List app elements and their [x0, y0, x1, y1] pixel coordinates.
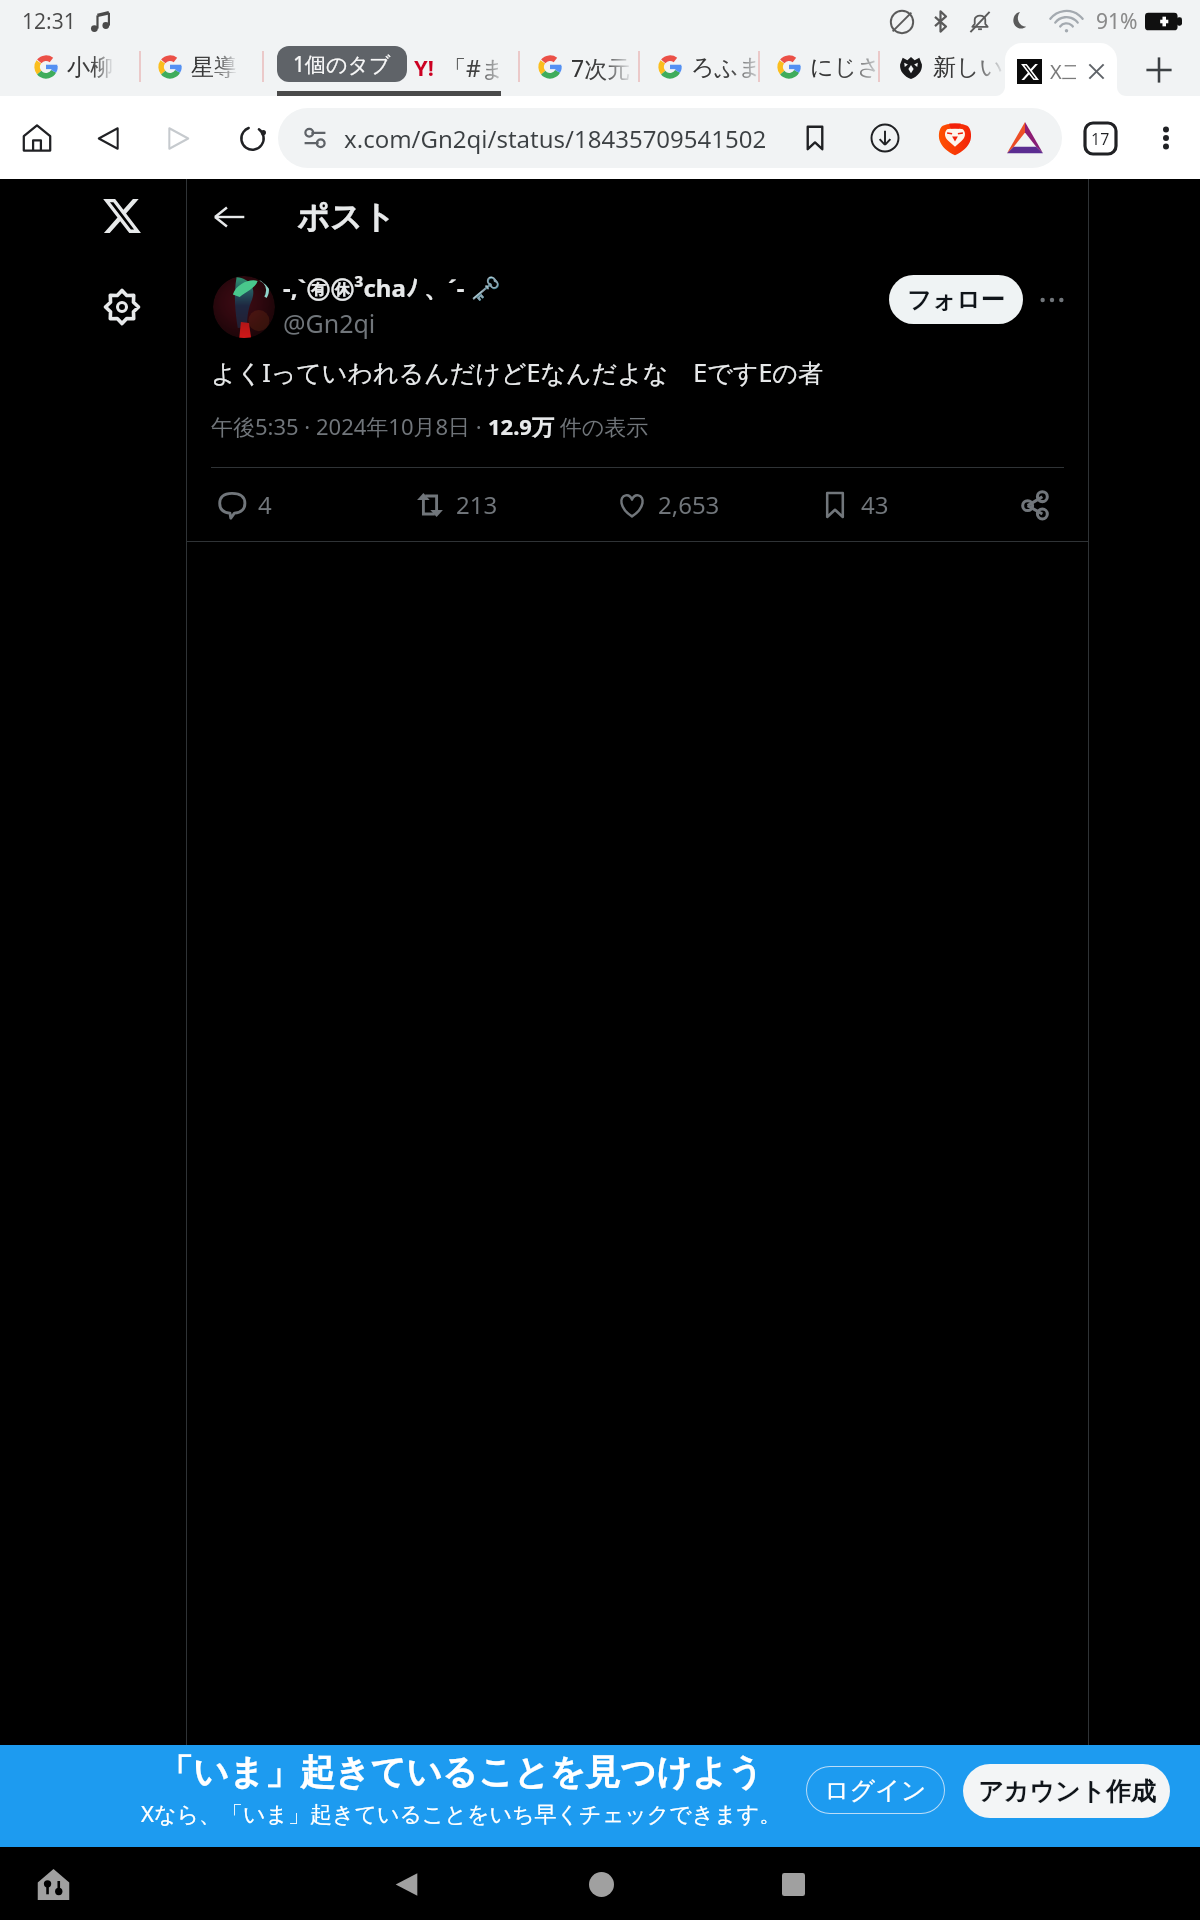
staticText: 1個のタブ [293, 50, 391, 79]
button[interactable]: Home [13, 114, 61, 162]
staticText: Xなら、「いま」起きていることをいち早くチェックできます。 [141, 1798, 781, 1828]
button[interactable]: More [1027, 275, 1077, 325]
staticText: -,`㊒㊡³chaﾉ 、´- 🗝 [283, 271, 501, 304]
staticText: よくIっていわれるんだけどEなんだよな EですEの者 [211, 355, 823, 389]
button[interactable]: 43 [820, 468, 970, 541]
staticText: 7次元 [571, 52, 631, 83]
staticText: 213 [456, 488, 498, 521]
staticText: X二 [1050, 58, 1076, 85]
button[interactable]: Back [199, 187, 259, 247]
button[interactable]: Recents [764, 1855, 822, 1913]
button[interactable]: Brave shields [933, 116, 977, 160]
button[interactable]: アカウント作成 [963, 1764, 1170, 1818]
button[interactable]: Share [1007, 468, 1063, 541]
staticText: 2,653 [658, 488, 720, 521]
staticText: フォロー [907, 285, 1005, 315]
staticText: 星導 [191, 53, 237, 82]
button[interactable]: Profile photo [213, 276, 275, 338]
button[interactable]: 7次元 [538, 43, 642, 91]
staticText: Y! [414, 52, 434, 82]
button[interactable]: フォロー [889, 275, 1023, 324]
button[interactable]: 小柳 [34, 43, 138, 91]
button[interactable]: Brave rewards [1003, 116, 1047, 160]
staticText: 12:31 [22, 7, 76, 36]
staticText: 12.9万 [488, 411, 554, 441]
button[interactable]: Back [377, 1855, 435, 1913]
button[interactable]: にじさ [777, 43, 881, 91]
staticText: 午後5:35 · 2024年10月8日 · [211, 411, 488, 441]
staticText: 新しい [933, 53, 1002, 82]
staticText: x.com/Gn2qi/status/18435709541502 [344, 122, 767, 155]
button[interactable]: x.com/Gn2qi/status/18435709541502 [278, 108, 1062, 168]
button[interactable]: 1個のタブ [277, 46, 407, 82]
button[interactable]: 新しい [898, 43, 1002, 91]
button[interactable]: 4 [217, 468, 367, 541]
button[interactable]: ろふま [658, 43, 762, 91]
staticText: 小柳 [67, 53, 113, 82]
staticText: アカウント作成 [978, 1776, 1156, 1807]
staticText: ログイン [824, 1775, 927, 1806]
button[interactable]: X home [90, 184, 154, 248]
staticText: 「#ま [443, 52, 505, 83]
staticText: ろふま [691, 53, 762, 82]
button[interactable]: Bookmark [793, 116, 837, 160]
button[interactable]: Tabs [1076, 114, 1124, 162]
button[interactable]: Y! [414, 43, 518, 91]
staticText: 91% [1096, 7, 1138, 36]
button[interactable]: Forward [154, 114, 202, 162]
staticText: ポスト [297, 197, 396, 237]
button[interactable]: Back [84, 114, 132, 162]
button[interactable]: New tab [1134, 45, 1184, 95]
button[interactable]: Reload [228, 114, 276, 162]
button[interactable]: Home assistant [27, 1858, 79, 1910]
button[interactable]: Home [572, 1855, 630, 1913]
button[interactable]: ログイン [806, 1766, 945, 1814]
button[interactable]: Download [863, 116, 907, 160]
staticText: 43 [861, 488, 889, 521]
button[interactable]: Settings [90, 275, 154, 339]
staticText: 17 [1091, 128, 1110, 150]
button[interactable]: More options [1142, 114, 1190, 162]
button[interactable]: 星導 [158, 43, 262, 91]
staticText: 4 [258, 488, 272, 521]
staticText: @Gn2qi [283, 306, 376, 340]
button[interactable]: 213 [415, 468, 565, 541]
staticText: 件の表示 [554, 411, 649, 441]
button[interactable]: Close tab [1086, 61, 1107, 82]
staticText: 「いま」起きていることを見つけよう [158, 1750, 764, 1794]
button[interactable]: 2,653 [617, 468, 767, 541]
staticText: にじさ [810, 53, 881, 82]
